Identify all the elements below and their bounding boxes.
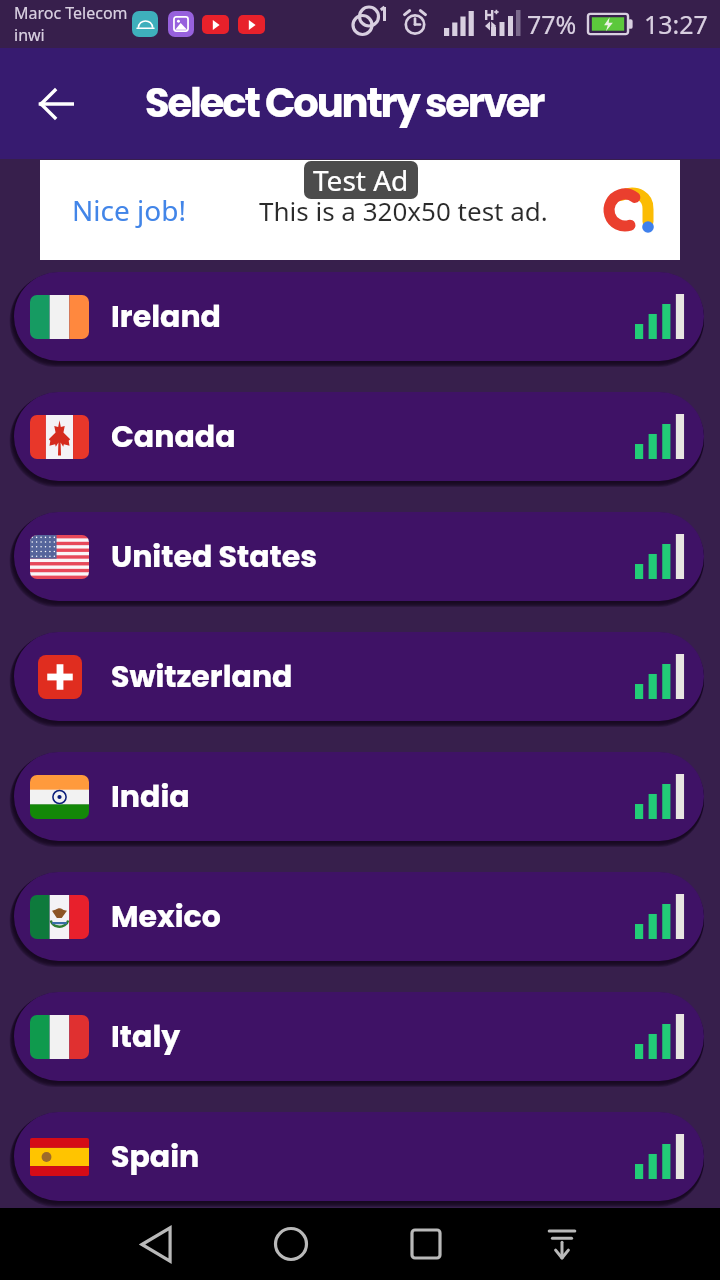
- staticText: Nice job!: [72, 191, 186, 229]
- staticText: This is a 320x50 test ad.: [259, 193, 548, 228]
- button[interactable]: Back: [114, 1208, 198, 1280]
- button[interactable]: Spain: [14, 1112, 704, 1201]
- staticText: Maroc Telecom: [14, 2, 128, 24]
- button[interactable]: Back: [28, 76, 84, 132]
- button[interactable]: Canada: [14, 392, 704, 481]
- staticText: India: [111, 776, 190, 818]
- staticText: Spain: [111, 1136, 200, 1178]
- button[interactable]: Mexico: [14, 872, 704, 961]
- staticText: 13:27: [644, 7, 708, 41]
- button[interactable]: Nice job!: [40, 160, 680, 260]
- button[interactable]: Ireland: [14, 272, 704, 361]
- button[interactable]: United States: [14, 512, 704, 601]
- button[interactable]: India: [14, 752, 704, 841]
- staticText: Canada: [111, 416, 236, 458]
- staticText: Select Country server: [145, 75, 544, 131]
- staticText: 77%: [527, 7, 577, 41]
- button[interactable]: Recents: [384, 1208, 468, 1280]
- button[interactable]: Home: [249, 1208, 333, 1280]
- staticText: Mexico: [111, 896, 221, 938]
- button[interactable]: Italy: [14, 992, 704, 1081]
- staticText: Test Ad: [313, 161, 409, 199]
- staticText: inwi: [14, 24, 45, 46]
- staticText: United States: [111, 536, 318, 578]
- button[interactable]: Hide navigation bar: [520, 1208, 604, 1280]
- staticText: Switzerland: [111, 656, 293, 698]
- button[interactable]: Switzerland: [14, 632, 704, 721]
- staticText: Italy: [111, 1016, 181, 1058]
- staticText: Ireland: [111, 296, 221, 338]
